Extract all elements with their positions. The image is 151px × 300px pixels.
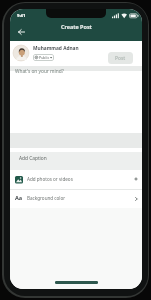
button[interactable]: Post — [108, 52, 133, 64]
staticText: Background color — [27, 195, 66, 201]
button[interactable]: Aa — [10, 190, 142, 208]
button[interactable] — [18, 29, 25, 35]
staticText: What's on your mind? — [15, 68, 64, 75]
button[interactable]: Add Caption — [10, 152, 142, 170]
staticText: Add Caption — [19, 155, 47, 162]
staticText: 9:41 — [17, 13, 26, 19]
staticText: Public — [39, 55, 50, 60]
staticText: Muhammad Adnan — [33, 45, 79, 52]
button[interactable]: Add photos or videos — [10, 170, 142, 189]
button[interactable]: Public — [33, 54, 54, 61]
staticText: Add photos or videos — [27, 176, 73, 182]
staticText: Create Post — [61, 23, 92, 30]
staticText: Aa — [15, 194, 23, 202]
staticText: Post — [115, 55, 126, 62]
